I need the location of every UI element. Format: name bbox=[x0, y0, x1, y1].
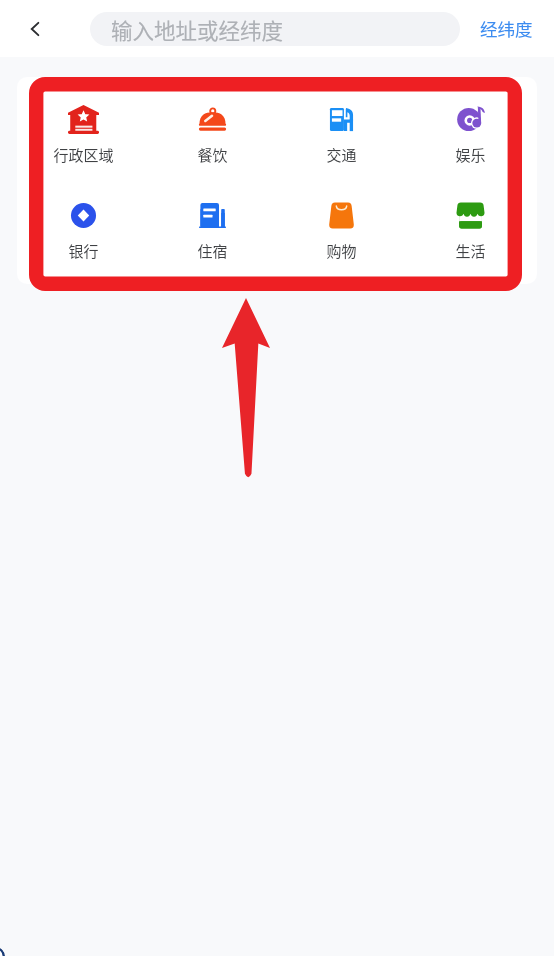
button[interactable]: 银行 bbox=[19, 201, 148, 262]
staticText: 银行 bbox=[68, 240, 99, 262]
staticText: 住宿 bbox=[197, 240, 228, 262]
button[interactable]: 经纬度 bbox=[466, 7, 554, 50]
staticText: 行政区域 bbox=[53, 144, 114, 166]
staticText: 输入地址或经纬度 bbox=[111, 14, 284, 45]
button[interactable]: 住宿 bbox=[148, 201, 277, 262]
staticText: 交通 bbox=[326, 144, 357, 166]
button[interactable]: 输入地址或经纬度 bbox=[90, 12, 460, 46]
button[interactable]: 娱乐 bbox=[406, 105, 535, 166]
staticText: 购物 bbox=[326, 240, 357, 262]
button[interactable]: Map control bbox=[0, 947, 5, 956]
button[interactable]: 购物 bbox=[277, 201, 406, 262]
button[interactable]: 餐饮 bbox=[148, 105, 277, 166]
staticText: 餐饮 bbox=[197, 144, 228, 166]
button[interactable]: 行政区域 bbox=[19, 105, 148, 166]
button[interactable]: Back bbox=[0, 1, 56, 57]
button[interactable]: 生活 bbox=[406, 201, 535, 262]
staticText: 经纬度 bbox=[480, 16, 533, 41]
button[interactable]: 交通 bbox=[277, 105, 406, 166]
staticText: 生活 bbox=[455, 240, 486, 262]
staticText: 娱乐 bbox=[455, 144, 486, 166]
